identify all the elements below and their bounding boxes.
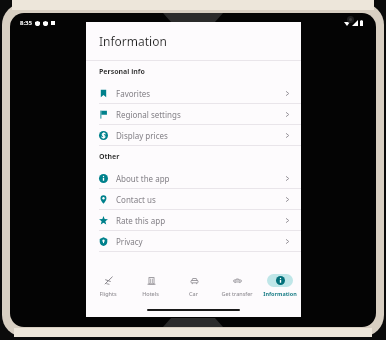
staticText: About the app	[116, 173, 170, 184]
staticText: Get transfer	[221, 290, 253, 297]
button[interactable]: Favorites	[86, 83, 301, 103]
staticText: Flights	[99, 290, 117, 297]
staticText: Car	[189, 290, 198, 297]
button[interactable]: Information	[258, 267, 301, 303]
staticText: 8:35	[20, 19, 32, 27]
staticText: Other	[99, 152, 120, 162]
staticText: Display prices	[116, 130, 168, 141]
button[interactable]: Hotels	[129, 267, 172, 303]
button[interactable]: Rate this app	[86, 210, 301, 230]
staticText: Contact us	[116, 194, 156, 205]
button[interactable]: Display prices	[86, 125, 301, 145]
staticText: Hotels	[142, 290, 159, 297]
staticText: Information	[263, 290, 297, 297]
staticText: Rate this app	[116, 215, 166, 226]
button[interactable]: Car	[172, 267, 215, 303]
staticText: Personal info	[99, 67, 145, 77]
button[interactable]: Contact us	[86, 189, 301, 209]
staticText: Privacy	[116, 236, 143, 247]
staticText: Regional settings	[116, 109, 181, 120]
button[interactable]: Privacy	[86, 231, 301, 251]
staticText: Favorites	[116, 88, 151, 99]
button[interactable]: About the app	[86, 168, 301, 188]
button[interactable]: Get transfer	[215, 267, 258, 303]
button[interactable]: Regional settings	[86, 104, 301, 124]
button[interactable]: Flights	[86, 267, 129, 303]
staticText: Information	[99, 33, 167, 49]
